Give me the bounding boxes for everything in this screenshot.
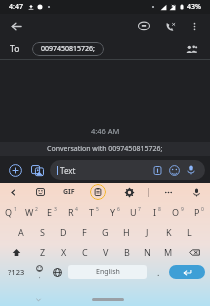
staticText: 43% — [187, 2, 201, 12]
button[interactable]: R — [62, 202, 83, 222]
button[interactable]: English — [68, 265, 147, 279]
button[interactable]: P — [188, 202, 209, 222]
staticText: Q — [5, 206, 13, 218]
button[interactable]: B — [116, 242, 137, 262]
staticText: E — [47, 206, 53, 218]
staticText: R — [68, 206, 74, 218]
staticText: S — [40, 226, 45, 238]
button[interactable]: ?123 — [3, 262, 30, 282]
button[interactable]: Y — [104, 202, 125, 222]
button[interactable]: S — [32, 222, 53, 242]
staticText: 9 — [181, 206, 184, 213]
staticText: GIF — [63, 187, 75, 197]
button[interactable]: V — [95, 242, 116, 262]
staticText: M — [164, 246, 173, 258]
button[interactable]: Switch to chat — [134, 16, 154, 36]
staticText: D — [60, 226, 67, 238]
staticText: Conversation with 0097450815726; — [47, 144, 163, 154]
button[interactable]: Collapse toolbar — [6, 185, 20, 199]
staticText: J — [146, 226, 149, 238]
staticText: , — [39, 272, 41, 280]
button[interactable]: . — [149, 262, 167, 282]
button[interactable]: N — [137, 242, 158, 262]
staticText: C — [82, 246, 88, 258]
staticText: 3 — [54, 206, 57, 213]
staticText: . — [157, 266, 160, 278]
staticText: L — [187, 226, 192, 238]
staticText: English — [96, 267, 120, 277]
staticText: Y — [110, 206, 116, 218]
button[interactable]: More options — [184, 16, 204, 36]
button[interactable]: Emoji keyboard — [30, 262, 48, 282]
button[interactable]: Stickers — [32, 184, 48, 200]
button[interactable]: Enter — [169, 265, 205, 279]
button[interactable]: K — [158, 222, 179, 242]
staticText: N — [144, 246, 151, 258]
staticText: 8 — [158, 206, 161, 213]
staticText: To — [10, 43, 20, 55]
staticText: B — [124, 246, 130, 258]
button[interactable]: Voice input — [184, 163, 198, 177]
staticText: 2 — [35, 206, 38, 213]
button[interactable]: E — [41, 202, 62, 222]
staticText: W — [25, 206, 34, 218]
staticText: P — [194, 206, 200, 218]
button[interactable]: M — [158, 242, 179, 262]
button[interactable]: Q — [1, 202, 21, 222]
button[interactable]: Text — [50, 160, 205, 180]
staticText: 6 — [117, 206, 120, 213]
button[interactable]: H — [116, 222, 137, 242]
button[interactable]: 0097450815726; — [32, 42, 104, 56]
staticText: U — [130, 206, 137, 218]
button[interactable]: Settings — [121, 184, 137, 200]
staticText: A — [18, 226, 24, 238]
button[interactable]: X — [53, 242, 74, 262]
button[interactable]: Gallery — [27, 160, 47, 180]
staticText: T — [89, 206, 95, 218]
button[interactable]: Add attachment — [5, 160, 25, 180]
staticText: G — [102, 226, 109, 238]
staticText: O — [172, 206, 180, 218]
staticText: 7 — [138, 206, 141, 213]
staticText: Z — [40, 246, 46, 258]
staticText: 5 — [96, 206, 99, 213]
staticText: ?123 — [8, 267, 25, 277]
button[interactable]: Z — [32, 242, 53, 262]
button[interactable]: Clipboard — [90, 184, 106, 200]
staticText: 0 — [201, 206, 204, 213]
button[interactable]: A — [10, 222, 32, 242]
staticText: K — [166, 226, 172, 238]
button[interactable]: F — [74, 222, 95, 242]
button[interactable]: Change language — [48, 262, 66, 282]
staticText: 1 — [14, 206, 17, 213]
button[interactable]: GIF — [63, 185, 75, 199]
staticText: F — [82, 226, 87, 238]
staticText: 4:46 AM — [91, 126, 120, 136]
staticText: H — [123, 226, 130, 238]
button[interactable]: More — [160, 184, 176, 200]
staticText: X — [61, 246, 67, 258]
button[interactable]: Call — [160, 16, 180, 36]
button[interactable]: Shift — [1, 242, 32, 262]
staticText: V — [103, 246, 109, 258]
button[interactable]: J — [137, 222, 158, 242]
button[interactable]: G — [95, 222, 116, 242]
staticText: 0097450815726; — [41, 44, 95, 54]
button[interactable]: Add people — [182, 40, 200, 58]
staticText: Text — [60, 165, 76, 176]
button[interactable]: T — [83, 202, 104, 222]
staticText: 4 — [75, 206, 78, 213]
button[interactable]: D — [53, 222, 74, 242]
button[interactable]: Back — [6, 16, 26, 36]
button[interactable]: Backspace — [179, 242, 209, 262]
button[interactable]: C — [74, 242, 95, 262]
button[interactable]: O — [167, 202, 188, 222]
button[interactable]: SIM — [150, 163, 164, 177]
button[interactable]: I — [146, 202, 167, 222]
button[interactable]: L — [179, 222, 200, 242]
button[interactable]: U — [125, 202, 146, 222]
button[interactable]: W — [21, 202, 41, 222]
staticText: I — [153, 206, 157, 218]
button[interactable]: Emoji — [167, 163, 181, 177]
button[interactable]: Voice typing — [188, 184, 204, 200]
